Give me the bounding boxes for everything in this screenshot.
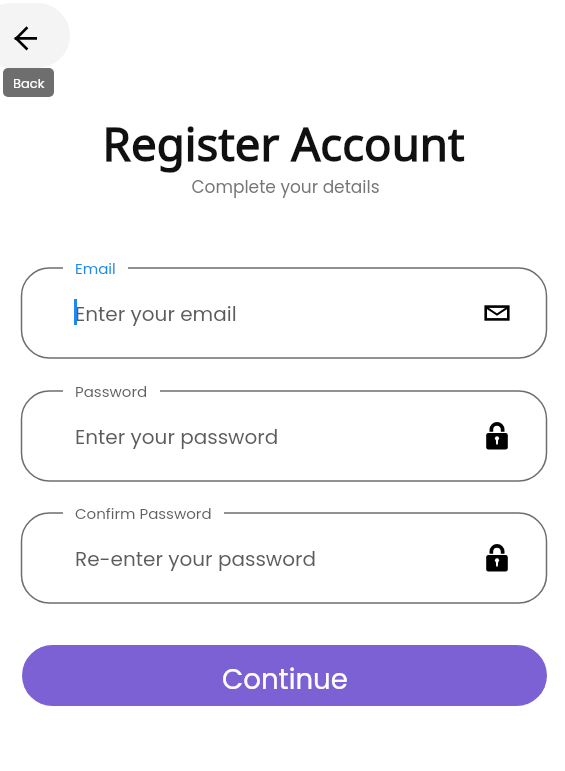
staticText: Email (75, 258, 116, 279)
button[interactable]: Email (481, 297, 513, 329)
staticText: Confirm Password (75, 503, 212, 524)
staticText: Re-enter your password (75, 545, 317, 573)
button[interactable]: Password (481, 542, 513, 574)
button[interactable]: Confirm Password (0, 513, 565, 603)
staticText: Password (75, 381, 148, 402)
button[interactable]: Password (0, 391, 565, 481)
staticText: Enter your password (75, 423, 279, 451)
staticText: Back (13, 74, 45, 92)
button[interactable]: Email (0, 268, 565, 358)
button[interactable]: Password (481, 420, 513, 452)
button[interactable]: Continue (22, 645, 547, 706)
button[interactable]: Back (0, 3, 70, 68)
staticText: Complete your details (3, 175, 565, 199)
staticText: Register Account (1, 112, 565, 174)
staticText: Continue (222, 660, 348, 699)
staticText: Enter your email (75, 300, 237, 328)
